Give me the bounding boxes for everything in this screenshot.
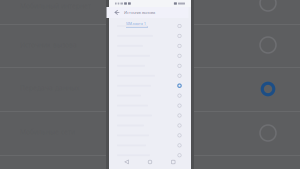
button[interactable]: Option (255, 32, 281, 58)
staticText: SIM-карта 1 (126, 21, 146, 26)
button[interactable]: Selected option (255, 76, 281, 102)
button[interactable]: Recent apps (168, 156, 179, 167)
button[interactable]: Back (111, 7, 122, 18)
staticText: Источник вызова (124, 10, 155, 15)
button[interactable]: Selected item (109, 81, 191, 91)
button[interactable]: Option (255, 120, 281, 146)
button[interactable]: Home (144, 156, 155, 167)
button[interactable]: List item (109, 21, 191, 31)
button[interactable]: Back (121, 156, 132, 167)
button[interactable]: Option (255, 0, 281, 16)
